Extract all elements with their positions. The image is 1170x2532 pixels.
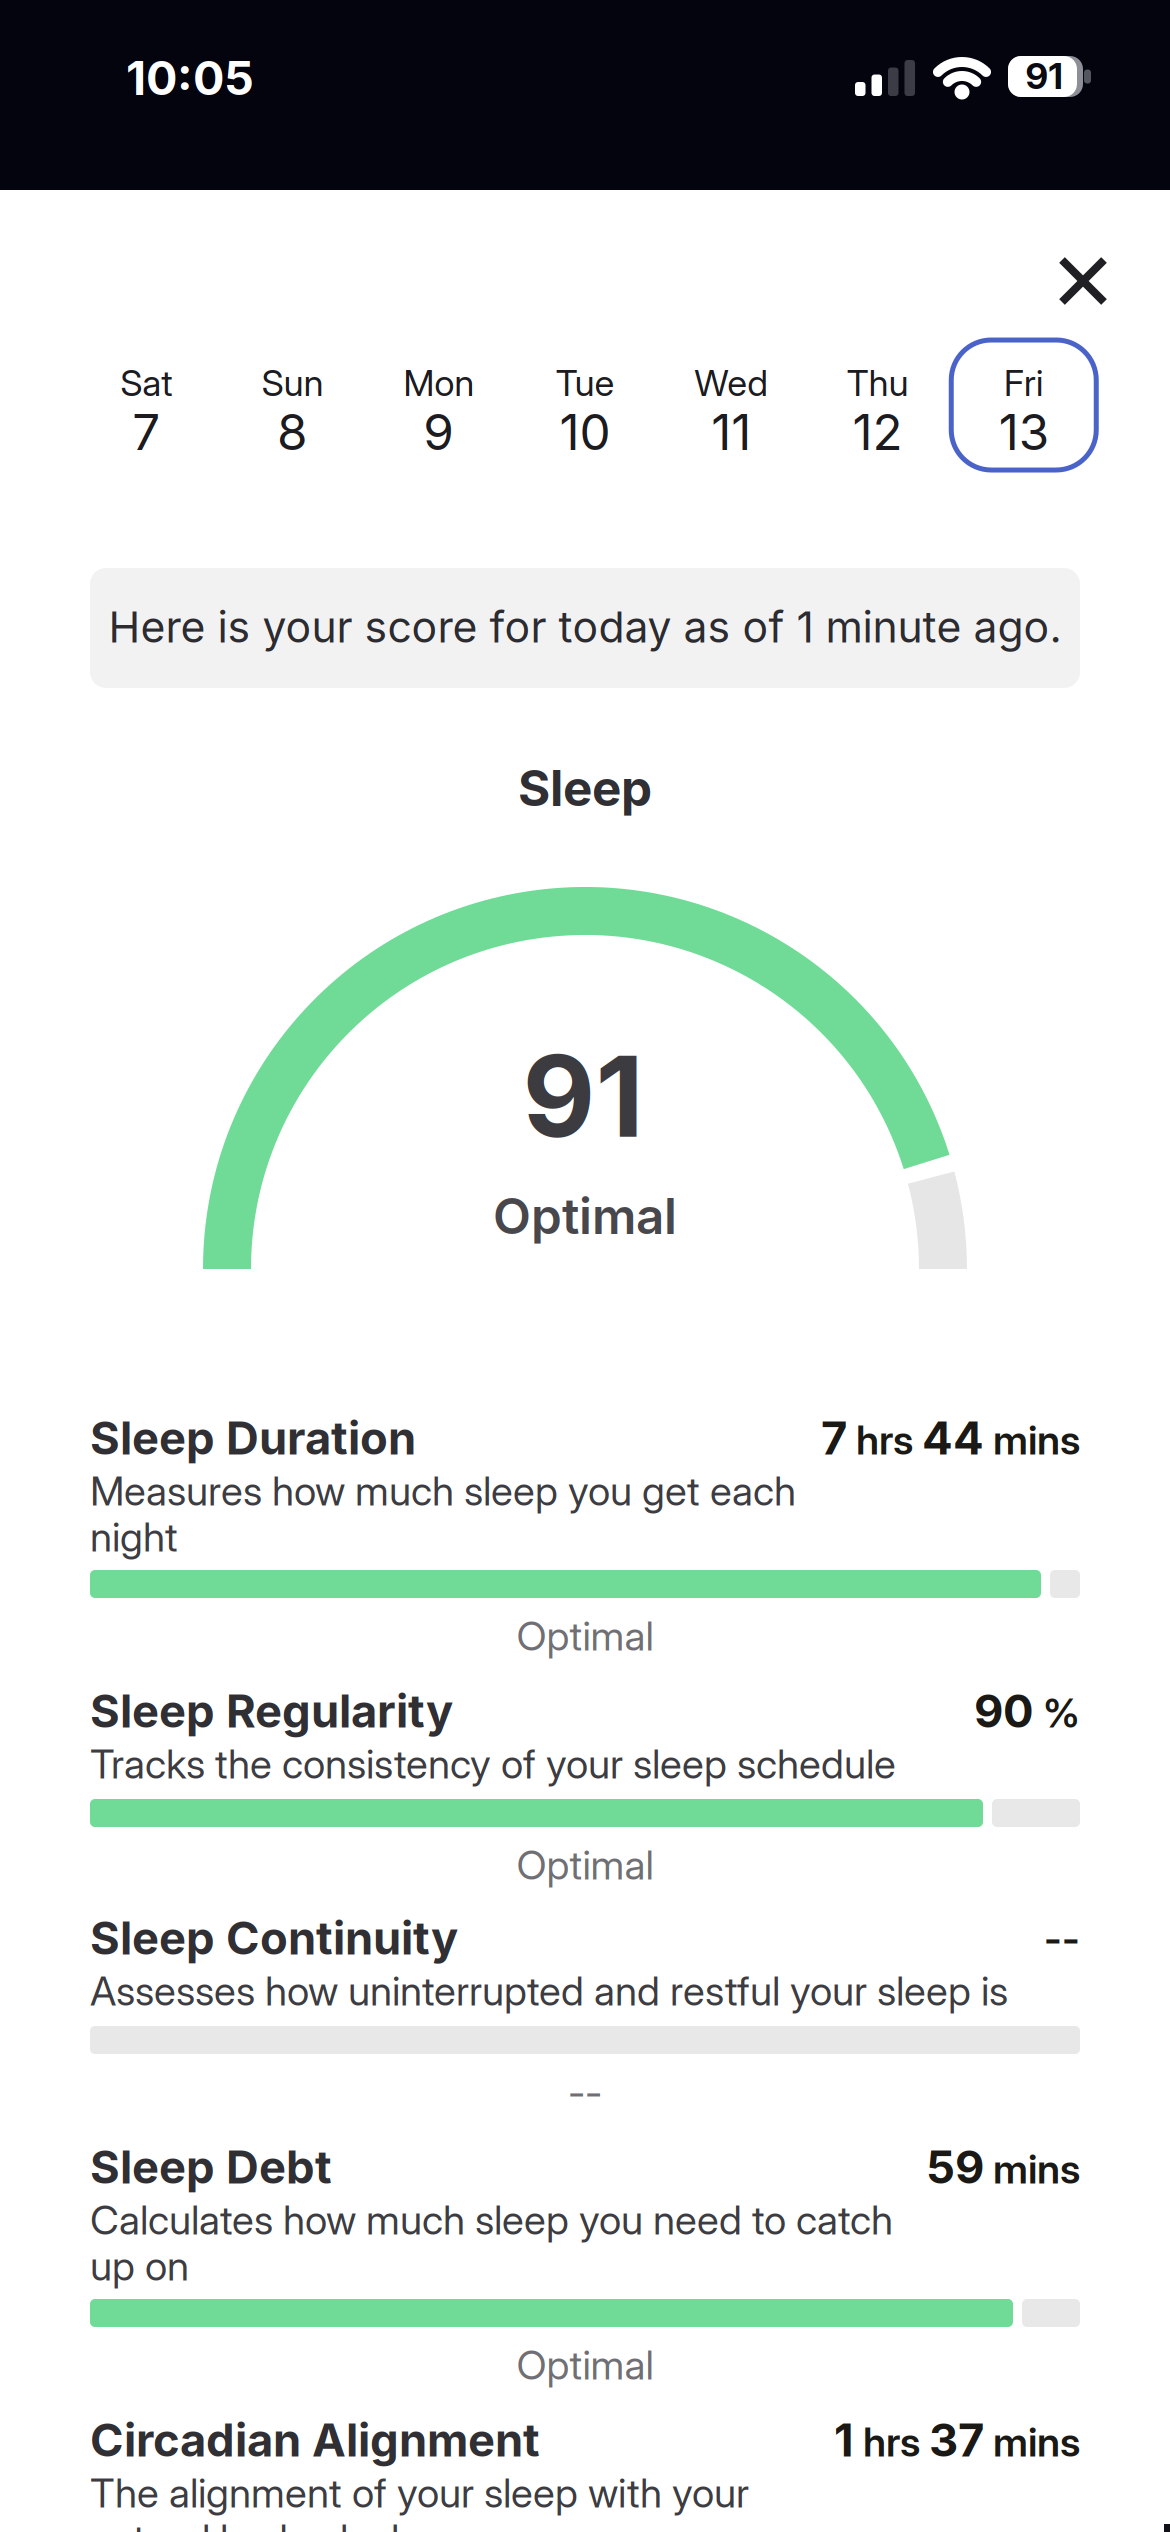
button[interactable]: Thu: [805, 340, 950, 470]
staticText: Measures how much sleep you get each: [90, 1467, 796, 1515]
staticText: The alignment of your sleep with your: [90, 2469, 749, 2517]
staticText: 10: [559, 403, 610, 461]
staticText: Tracks the consistency of your sleep sch…: [90, 1740, 896, 1788]
staticText: Circadian Alignment: [90, 2413, 540, 2467]
staticText: Sleep Debt: [90, 2140, 332, 2194]
button[interactable]: Close: [1053, 251, 1113, 311]
staticText: 7: [132, 403, 160, 461]
staticText: Optimal: [516, 1841, 653, 1889]
staticText: Here is your score for today as of 1 min…: [108, 602, 1061, 652]
staticText: 10:05: [126, 50, 254, 106]
staticText: Optimal: [493, 1187, 677, 1245]
staticText: 90 %: [974, 1684, 1080, 1738]
staticText: 91: [1025, 55, 1062, 97]
staticText: night: [90, 1513, 178, 1561]
staticText: Sleep Continuity: [90, 1911, 458, 1965]
staticText: Wed: [694, 362, 768, 404]
staticText: Calculates how much sleep you need to ca…: [90, 2196, 893, 2244]
staticText: Fri: [1004, 362, 1044, 404]
staticText: 59 mins: [926, 2140, 1080, 2194]
staticText: Sleep: [518, 759, 652, 817]
button[interactable]: Wed: [659, 340, 804, 470]
staticText: Tue: [555, 362, 614, 404]
staticText: 8: [277, 403, 308, 461]
staticText: Mon: [403, 362, 474, 404]
staticText: natural body clock: [90, 2515, 411, 2532]
staticText: 91: [522, 1030, 643, 1162]
button[interactable]: Sat: [74, 340, 219, 470]
staticText: Sleep Duration: [90, 1411, 416, 1465]
staticText: --: [1044, 1914, 1080, 1962]
button[interactable]: Fri: [951, 340, 1096, 470]
button[interactable]: Tue: [512, 340, 657, 470]
staticText: Optimal: [516, 2341, 653, 2389]
staticText: Thu: [846, 362, 908, 404]
staticText: 11: [711, 403, 751, 461]
staticText: up on: [90, 2242, 189, 2290]
staticText: Assesses how uninterrupted and restful y…: [90, 1967, 1008, 2015]
staticText: 12: [852, 403, 902, 461]
staticText: Sat: [120, 362, 172, 404]
button[interactable]: Mon: [366, 340, 511, 470]
staticText: Sun: [261, 362, 323, 404]
staticText: 13: [999, 403, 1049, 461]
staticText: 7 hrs 44 mins: [821, 1411, 1080, 1465]
button[interactable]: Sun: [220, 340, 365, 470]
staticText: --: [568, 2068, 602, 2116]
staticText: Sleep Regularity: [90, 1684, 453, 1738]
staticText: 1 hrs 37 mins: [834, 2413, 1080, 2467]
staticText: Optimal: [516, 1612, 653, 1660]
staticText: 9: [423, 403, 454, 461]
